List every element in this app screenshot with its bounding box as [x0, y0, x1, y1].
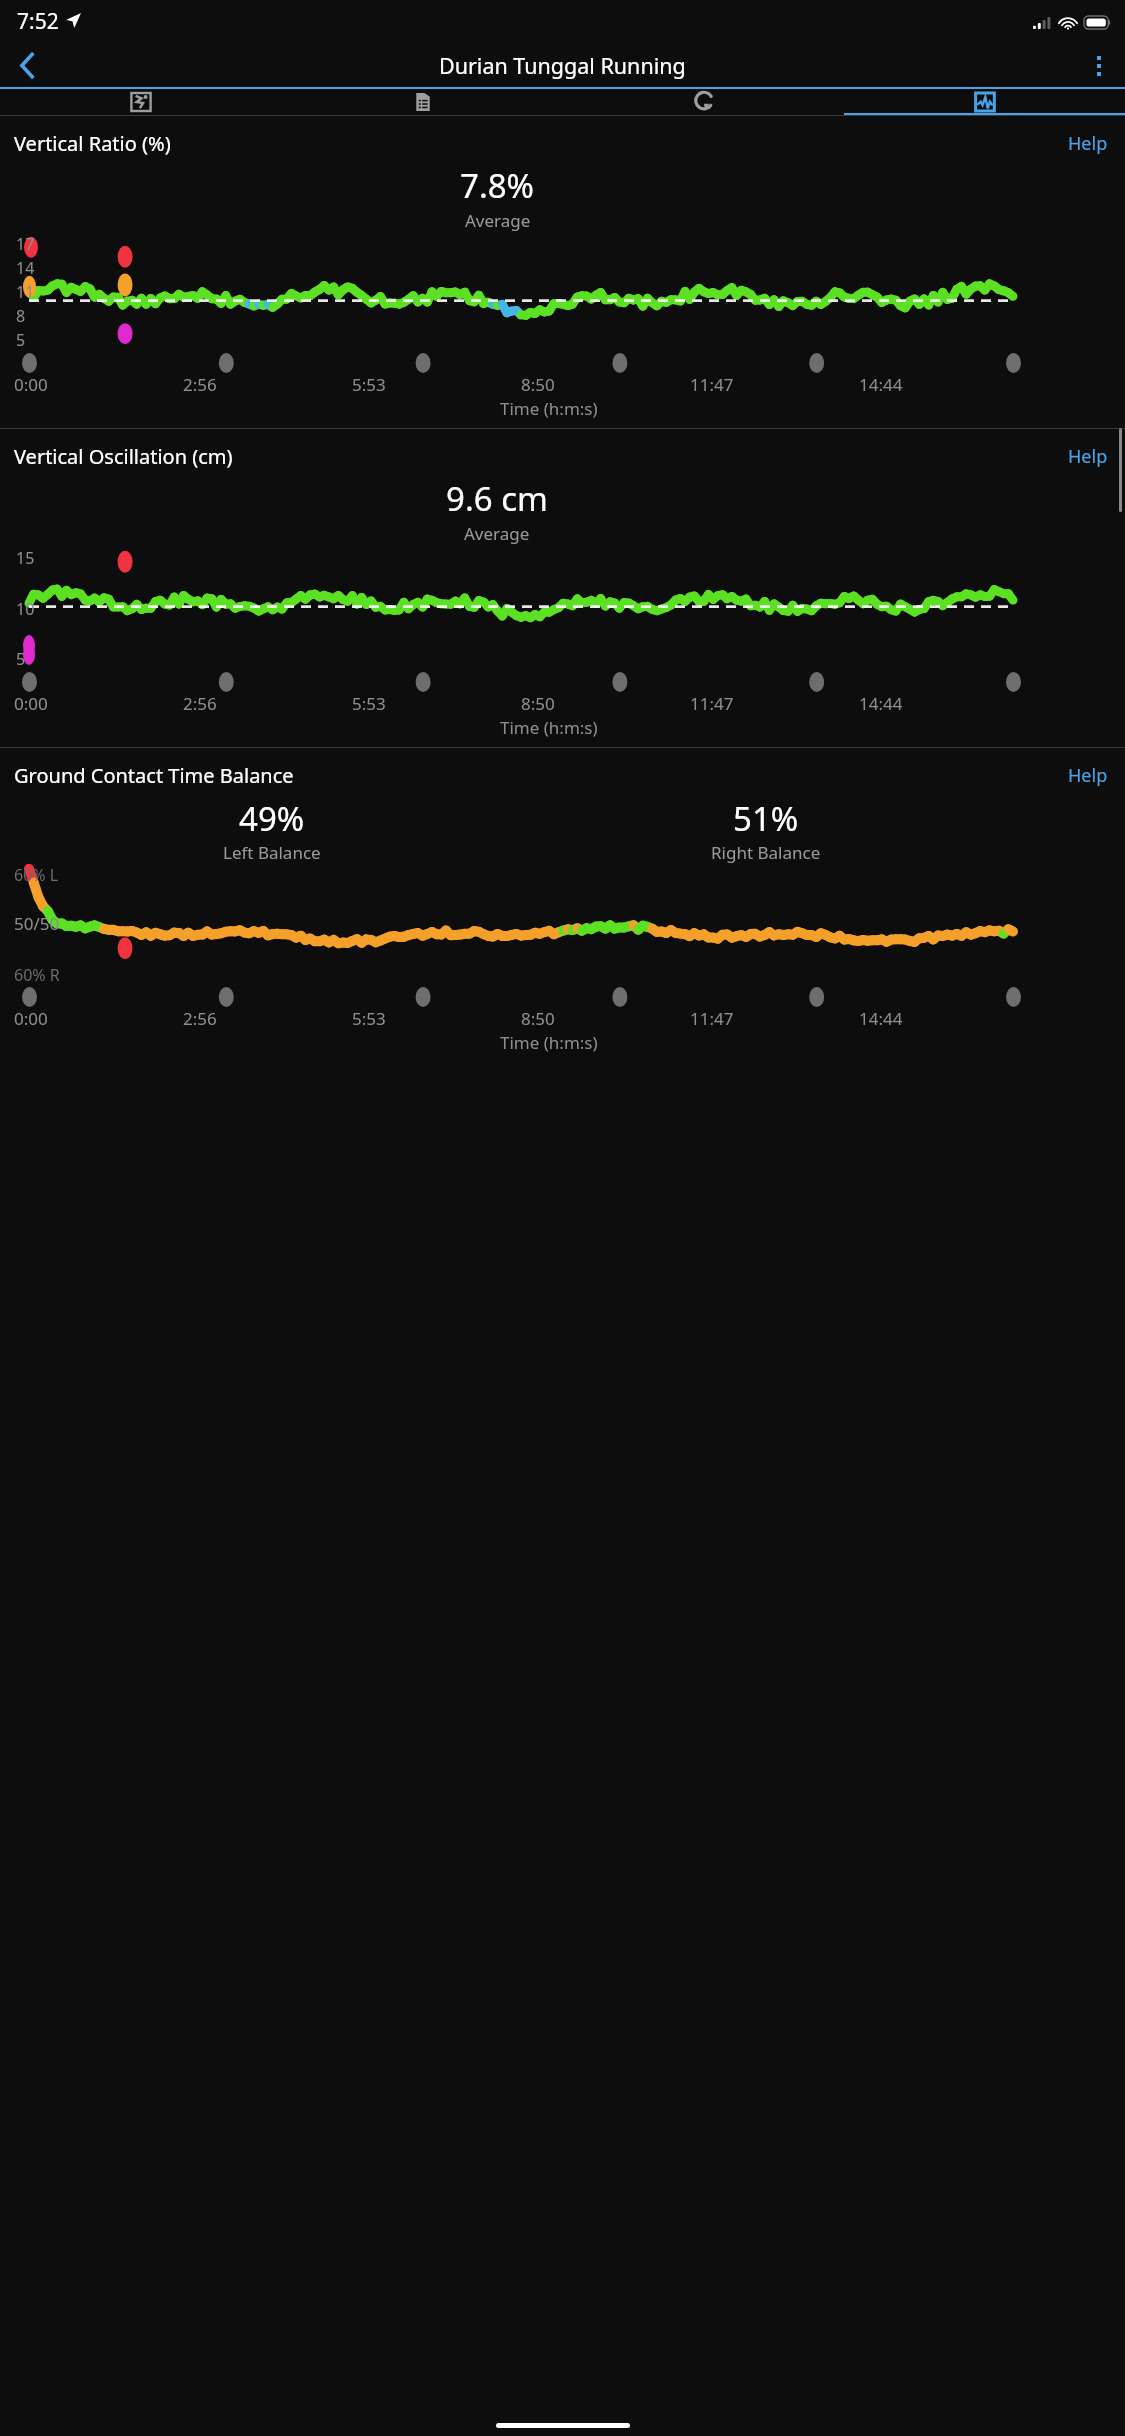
button[interactable]: Back	[0, 44, 54, 87]
staticText: 0:00	[14, 1007, 48, 1030]
staticText: 14:44	[859, 692, 903, 715]
staticText: 50/50	[14, 912, 60, 935]
staticText: 7.8%	[460, 163, 535, 208]
staticText: 5:53	[352, 373, 386, 396]
staticText: 60% L	[14, 864, 59, 886]
staticText: 5:53	[352, 692, 386, 715]
staticText: 5	[16, 648, 26, 670]
staticText: 14	[16, 257, 35, 279]
staticText: 11:47	[690, 1007, 734, 1030]
staticText: 5:53	[352, 1007, 386, 1030]
staticText: 2:56	[183, 1007, 217, 1030]
staticText: 15	[16, 547, 35, 569]
button[interactable]: Laps	[563, 89, 844, 115]
staticText: 7:52	[17, 7, 59, 36]
button[interactable]: Charts	[844, 89, 1125, 115]
staticText: 2:56	[183, 692, 217, 715]
button[interactable]: Help	[1064, 440, 1112, 473]
button[interactable]: Help	[1064, 127, 1112, 160]
staticText: 11:47	[690, 373, 734, 396]
staticText: 49%	[239, 796, 305, 841]
staticText: Time (h:m:s)	[500, 397, 598, 420]
staticText: 0:00	[14, 373, 48, 396]
staticText: Right Balance	[711, 841, 821, 864]
staticText: Help	[1068, 131, 1108, 156]
staticText: 51%	[733, 796, 799, 841]
staticText: 11:47	[690, 692, 734, 715]
button[interactable]: Details	[282, 89, 563, 115]
staticText: Time (h:m:s)	[500, 716, 598, 739]
staticText: 10	[16, 598, 35, 620]
staticText: Durian Tunggal Running	[439, 51, 686, 80]
staticText: 60% R	[14, 964, 60, 986]
staticText: 0:00	[14, 692, 48, 715]
staticText: 8:50	[521, 692, 555, 715]
staticText: 8:50	[521, 373, 555, 396]
staticText: 2:56	[183, 373, 217, 396]
staticText: 5	[16, 329, 26, 351]
staticText: 17	[16, 233, 35, 255]
staticText: 14:44	[859, 1007, 903, 1030]
staticText: Help	[1068, 763, 1108, 788]
staticText: 8:50	[521, 1007, 555, 1030]
staticText: Average	[465, 209, 531, 232]
staticText: Vertical Oscillation (cm)	[14, 443, 233, 470]
staticText: Time (h:m:s)	[500, 1031, 598, 1054]
staticText: 8	[16, 305, 26, 327]
staticText: Help	[1068, 444, 1108, 469]
staticText: 14:44	[859, 373, 903, 396]
staticText: Average	[464, 522, 530, 545]
staticText: Left Balance	[223, 841, 321, 864]
staticText: 9.6 cm	[446, 476, 548, 521]
button[interactable]: Map	[0, 89, 282, 115]
staticText: 11	[16, 281, 35, 303]
button[interactable]: Help	[1064, 759, 1112, 792]
button[interactable]: More options	[1073, 44, 1125, 87]
staticText: Ground Contact Time Balance	[14, 762, 294, 789]
staticText: Vertical Ratio (%)	[14, 130, 171, 157]
